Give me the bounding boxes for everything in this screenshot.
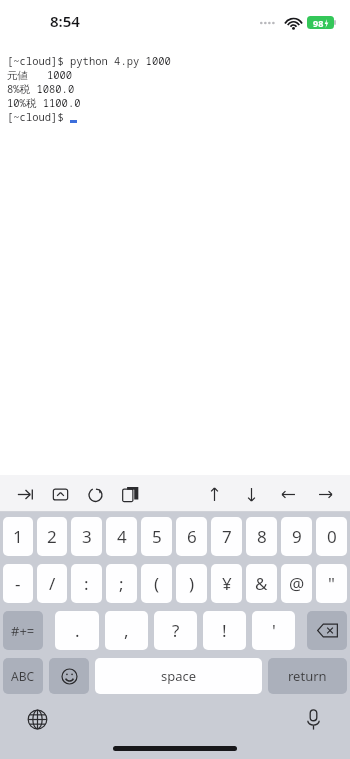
button[interactable]: ¥ (211, 564, 242, 603)
button[interactable]: 0 (316, 517, 347, 556)
staticText: 6 (187, 525, 197, 548)
staticText: 1 (13, 525, 23, 548)
button[interactable]: Backspace (307, 611, 347, 650)
button[interactable]: Paste (119, 483, 141, 505)
button[interactable]: : (71, 564, 102, 603)
button[interactable]: , (105, 611, 148, 650)
button[interactable]: ' (252, 611, 295, 650)
staticText: ABC (11, 668, 35, 684)
staticText: : (84, 572, 89, 595)
button[interactable]: 2 (37, 517, 67, 556)
button[interactable]: Arrow right (314, 483, 336, 505)
staticText: . (75, 619, 80, 642)
staticText: 8 (257, 525, 267, 548)
button[interactable]: 5 (141, 517, 172, 556)
button[interactable]: ? (154, 611, 197, 650)
staticText: 4 (117, 525, 127, 548)
staticText: ) (189, 572, 195, 595)
staticText: return (288, 667, 327, 685)
staticText: 0 (327, 525, 337, 548)
staticText: 元値 1000 (7, 68, 73, 82)
button[interactable]: Dictation (298, 704, 328, 734)
button[interactable]: ABC (3, 658, 43, 694)
button[interactable]: / (37, 564, 67, 603)
button[interactable]: Tab (14, 483, 36, 505)
staticText: " (328, 572, 335, 595)
button[interactable]: 4 (106, 517, 137, 556)
button[interactable]: - (3, 564, 33, 603)
staticText: 2 (47, 525, 57, 548)
button[interactable]: Undo (84, 483, 106, 505)
button[interactable]: ; (106, 564, 137, 603)
staticText: 98 (313, 17, 324, 29)
button[interactable]: Arrow up (203, 483, 225, 505)
staticText: - (15, 572, 21, 595)
staticText: ! (222, 619, 227, 642)
button[interactable]: 9 (281, 517, 312, 556)
button[interactable]: #+= (3, 611, 43, 650)
button[interactable]: 6 (176, 517, 207, 556)
staticText: #+= (11, 622, 35, 640)
staticText: / (49, 572, 56, 595)
staticText: 5 (152, 525, 162, 548)
button[interactable]: Change keyboard (22, 704, 52, 734)
staticText: , (124, 619, 129, 642)
staticText: 8%税 1080.0 (7, 82, 75, 96)
staticText: 3 (82, 525, 92, 548)
staticText: ' (272, 619, 276, 642)
staticText: @ (289, 572, 305, 595)
staticText: 8:54 (50, 11, 80, 31)
button[interactable]: ( (141, 564, 172, 603)
staticText: 7 (222, 525, 232, 548)
button[interactable]: @ (281, 564, 312, 603)
button[interactable]: . (55, 611, 99, 650)
staticText: 9 (292, 525, 302, 548)
staticText: [~cloud]$ (7, 110, 70, 124)
button[interactable]: 8 (246, 517, 277, 556)
button[interactable]: ! (203, 611, 246, 650)
staticText: ; (119, 572, 124, 595)
button[interactable]: & (246, 564, 277, 603)
button[interactable]: ) (176, 564, 207, 603)
button[interactable]: 3 (71, 517, 102, 556)
button[interactable]: Arrow left (277, 483, 299, 505)
staticText: 10%税 1100.0 (7, 96, 81, 110)
button[interactable]: Control (49, 483, 71, 505)
button[interactable]: Emoji (49, 658, 89, 694)
staticText: [~cloud]$ python 4.py 1000 (7, 54, 171, 68)
staticText: ? (172, 619, 180, 642)
staticText: ¥ (222, 572, 232, 595)
button[interactable]: space (95, 658, 262, 694)
button[interactable]: 1 (3, 517, 33, 556)
button[interactable]: " (316, 564, 347, 603)
button[interactable]: 7 (211, 517, 242, 556)
button[interactable]: return (268, 658, 347, 694)
staticText: space (161, 667, 197, 685)
staticText: & (255, 572, 268, 595)
staticText: ( (154, 572, 160, 595)
button[interactable]: Arrow down (240, 483, 262, 505)
